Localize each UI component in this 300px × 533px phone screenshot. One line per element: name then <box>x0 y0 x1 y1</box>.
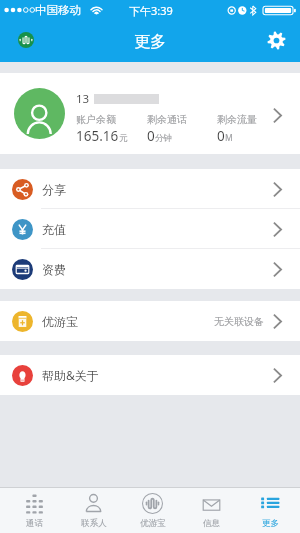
button[interactable]: 分享 <box>0 169 300 209</box>
button[interactable]: 优游宝 <box>123 488 182 533</box>
button[interactable]: 充值 <box>0 209 300 249</box>
staticText: 账户余额 <box>76 113 116 126</box>
staticText: 分享 <box>42 182 66 197</box>
staticText: 下午3:39 <box>129 3 173 18</box>
staticText: 信息 <box>203 518 220 529</box>
staticText: 0 <box>217 127 225 145</box>
staticText: 优游宝 <box>42 314 78 329</box>
button[interactable]: 帮助&关于 <box>0 355 300 395</box>
staticText: 分钟 <box>155 133 172 144</box>
button[interactable]: 通话 <box>4 488 64 533</box>
staticText: 优游宝 <box>140 518 166 529</box>
staticText: 165.16 <box>76 127 119 145</box>
staticText: 0 <box>147 127 155 145</box>
staticText: 13 <box>76 91 90 107</box>
staticText: 联系人 <box>81 518 107 529</box>
staticText: 帮助&关于 <box>42 367 99 383</box>
button[interactable]: 13 <box>0 73 300 154</box>
staticText: 中国移动 <box>35 3 81 17</box>
staticText: 剩余通话 <box>147 113 187 126</box>
button[interactable]: 信息 <box>182 488 241 533</box>
button[interactable]: Settings <box>263 26 291 54</box>
staticText: 无关联设备 <box>214 315 264 328</box>
button[interactable]: 联系人 <box>64 488 123 533</box>
staticText: 更多 <box>262 518 279 529</box>
staticText: 更多 <box>134 32 166 52</box>
staticText: M <box>225 132 233 144</box>
staticText: 充值 <box>42 222 66 237</box>
staticText: 通话 <box>26 518 43 529</box>
staticText: 资费 <box>42 262 66 277</box>
button[interactable]: 优游宝 <box>0 301 300 341</box>
button[interactable]: 资费 <box>0 249 300 289</box>
staticText: 元 <box>119 133 128 144</box>
staticText: 剩余流量 <box>217 113 257 126</box>
button[interactable]: 更多 <box>241 488 300 533</box>
